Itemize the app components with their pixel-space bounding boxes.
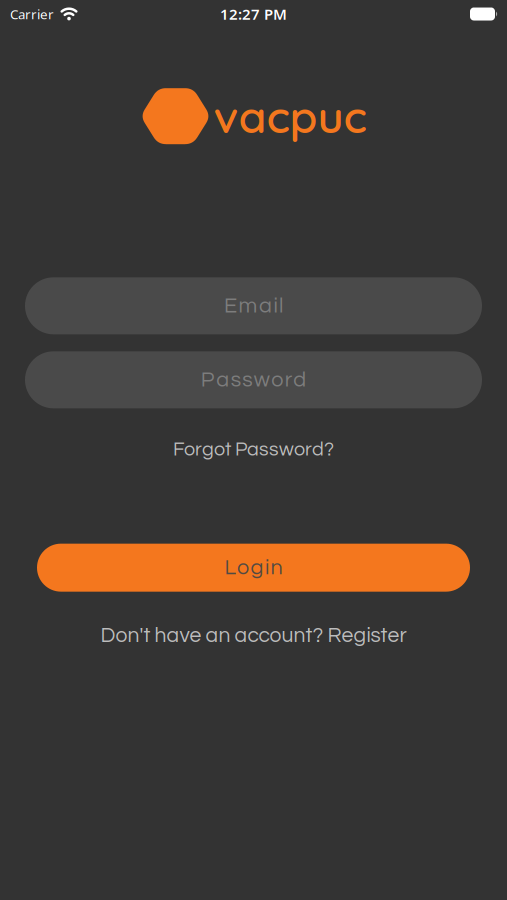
- staticText: 12:27 PM: [220, 4, 287, 24]
- staticText: Password: [201, 369, 306, 391]
- button[interactable]: Email: [25, 277, 482, 334]
- staticText: Forgot Password?: [173, 439, 334, 460]
- button[interactable]: Login: [37, 544, 470, 592]
- staticText: Carrier: [10, 5, 54, 23]
- button[interactable]: Forgot Password?: [173, 439, 334, 460]
- staticText: Email: [224, 295, 283, 317]
- button[interactable]: Don't have an account? Register: [100, 625, 406, 646]
- staticText: Login: [224, 556, 282, 579]
- staticText: vacpuc: [213, 88, 366, 144]
- button[interactable]: Password: [25, 351, 482, 408]
- staticText: Don't have an account? Register: [100, 625, 406, 646]
